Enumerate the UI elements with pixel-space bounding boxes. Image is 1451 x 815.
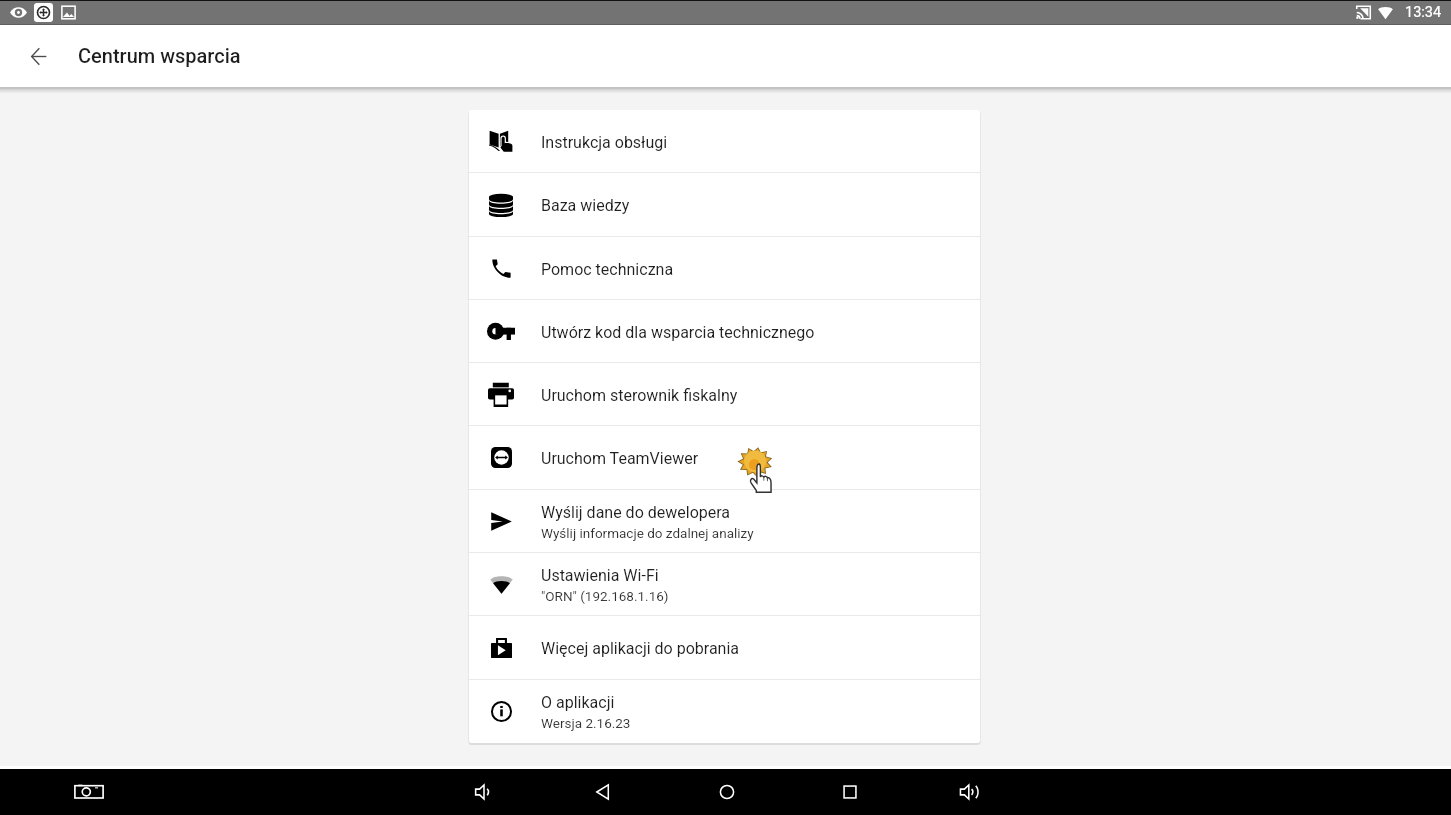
staticText: Uruchom sterownik fiskalny bbox=[541, 386, 738, 405]
button[interactable]: Baza wiedzy bbox=[469, 173, 980, 236]
staticText: Więcej aplikacji do pobrania bbox=[541, 639, 740, 658]
button[interactable]: Instrukcja obsługi bbox=[469, 110, 980, 172]
staticText: 13:34 bbox=[1405, 4, 1442, 21]
button[interactable]: Screenshot bbox=[71, 774, 107, 810]
staticText: "ORN" (192.168.1.16) bbox=[541, 588, 669, 604]
button[interactable]: Home bbox=[707, 772, 747, 812]
staticText: Utwórz kod dla wsparcia technicznego bbox=[541, 323, 815, 342]
button[interactable]: Back bbox=[23, 40, 55, 72]
button[interactable]: Volume up bbox=[951, 772, 991, 812]
button[interactable]: Back bbox=[583, 772, 623, 812]
button[interactable]: Screenshot bbox=[59, 3, 78, 22]
staticText: Instrukcja obsługi bbox=[541, 133, 668, 152]
staticText: O aplikacji bbox=[541, 693, 615, 712]
button[interactable]: Więcej aplikacji do pobrania bbox=[469, 616, 980, 679]
staticText: Wyślij dane do dewelopera bbox=[541, 503, 731, 522]
button[interactable]: Ustawienia Wi-Fi bbox=[469, 553, 980, 615]
button[interactable]: Uruchom TeamViewer bbox=[469, 426, 980, 489]
button[interactable]: O aplikacji bbox=[469, 680, 980, 742]
button[interactable]: Move window bbox=[34, 3, 53, 22]
staticText: Pomoc techniczna bbox=[541, 260, 674, 279]
button[interactable]: Utwórz kod dla wsparcia technicznego bbox=[469, 300, 980, 362]
staticText: Centrum wsparcia bbox=[78, 44, 241, 67]
button[interactable]: Volume down bbox=[464, 772, 504, 812]
staticText: Wersja 2.16.23 bbox=[541, 715, 631, 731]
button[interactable]: Recents bbox=[830, 772, 870, 812]
button[interactable]: Preview bbox=[9, 3, 28, 22]
button[interactable]: Wyślij dane do dewelopera bbox=[469, 490, 980, 552]
button[interactable]: Uruchom sterownik fiskalny bbox=[469, 363, 980, 425]
staticText: Uruchom TeamViewer bbox=[541, 449, 699, 468]
staticText: Wyślij informacje do zdalnej analizy bbox=[541, 525, 754, 541]
staticText: Baza wiedzy bbox=[541, 196, 630, 215]
staticText: Ustawienia Wi-Fi bbox=[541, 566, 659, 585]
button[interactable]: Pomoc techniczna bbox=[469, 237, 980, 299]
